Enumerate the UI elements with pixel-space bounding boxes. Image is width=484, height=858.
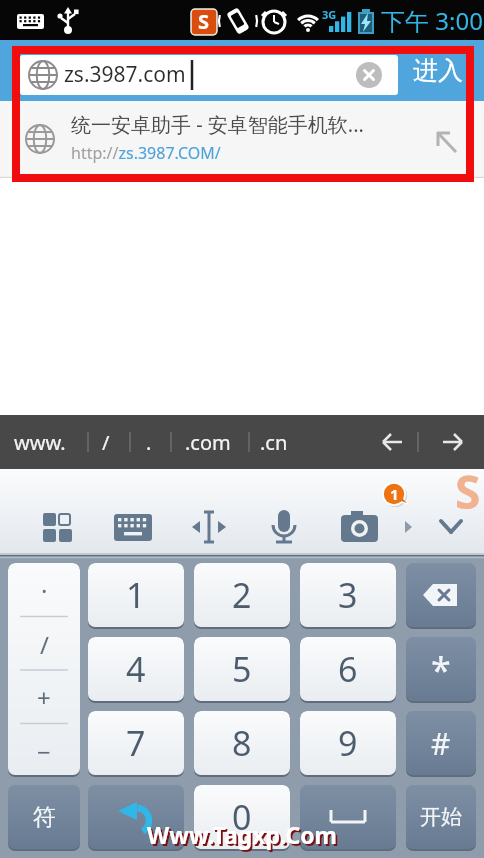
button[interactable]: + bbox=[8, 670, 80, 724]
staticText: www. bbox=[14, 429, 66, 456]
staticText: / bbox=[40, 628, 49, 661]
button[interactable]: www. bbox=[8, 415, 72, 469]
staticText: 4 bbox=[126, 646, 146, 692]
button[interactable] bbox=[114, 509, 154, 549]
staticText: 7 bbox=[126, 720, 146, 766]
button[interactable] bbox=[340, 509, 380, 549]
button[interactable]: .cn bbox=[254, 415, 294, 469]
button[interactable]: − bbox=[8, 724, 80, 775]
button[interactable] bbox=[190, 509, 230, 549]
staticText: 2 bbox=[232, 572, 252, 618]
button[interactable]: * bbox=[406, 637, 476, 701]
button[interactable] bbox=[436, 425, 470, 459]
button[interactable] bbox=[376, 425, 410, 459]
button[interactable]: 1 bbox=[88, 563, 184, 627]
staticText: − bbox=[37, 735, 51, 768]
button[interactable]: 统一安卓助手 - 安卓智能手机软... bbox=[0, 101, 484, 178]
staticText: 开始 bbox=[420, 804, 462, 830]
staticText: 3 bbox=[338, 572, 358, 618]
button[interactable]: # bbox=[406, 711, 476, 775]
staticText: 0 bbox=[232, 794, 252, 840]
staticText: 进入 bbox=[413, 55, 463, 86]
staticText: Www.Tagxp.Com bbox=[149, 821, 340, 852]
button[interactable]: 开始 bbox=[406, 785, 476, 849]
button[interactable]: 进入 bbox=[404, 40, 472, 101]
button[interactable]: 符 bbox=[8, 785, 80, 849]
button[interactable]: 0 bbox=[194, 785, 290, 849]
button[interactable]: 9 bbox=[300, 711, 396, 775]
button[interactable]: / bbox=[96, 415, 116, 469]
staticText: 1 bbox=[126, 572, 146, 618]
button[interactable]: .com bbox=[179, 415, 237, 469]
staticText: S bbox=[198, 8, 210, 35]
staticText: + bbox=[37, 681, 51, 714]
staticText: 8 bbox=[232, 720, 252, 766]
staticText: Www.Tagxp.Com bbox=[147, 819, 338, 850]
staticText: · bbox=[41, 574, 48, 607]
button[interactable]: 5 bbox=[194, 637, 290, 701]
staticText: 3G bbox=[322, 7, 337, 22]
button[interactable] bbox=[300, 785, 396, 849]
button[interactable] bbox=[266, 509, 306, 549]
staticText: * bbox=[431, 645, 451, 694]
button[interactable] bbox=[38, 509, 78, 549]
button[interactable]: 6 bbox=[300, 637, 396, 701]
button[interactable]: 8 bbox=[194, 711, 290, 775]
staticText: 6 bbox=[338, 646, 358, 692]
staticText: 符 bbox=[33, 803, 56, 832]
staticText: 9 bbox=[338, 720, 358, 766]
staticText: S bbox=[455, 460, 481, 523]
staticText: 5 bbox=[232, 646, 252, 692]
staticText: .com bbox=[185, 429, 231, 456]
staticText: # bbox=[431, 723, 451, 764]
staticText: . bbox=[146, 429, 152, 456]
button[interactable]: zs.3987.com bbox=[20, 55, 398, 95]
staticText: 统一安卓助手 - 安卓智能手机软... bbox=[71, 111, 364, 138]
button[interactable] bbox=[430, 509, 470, 549]
button[interactable]: · bbox=[8, 563, 80, 617]
button[interactable]: 7 bbox=[88, 711, 184, 775]
staticText: 1 bbox=[390, 484, 399, 504]
staticText: http://zs.3987.COM/ bbox=[71, 142, 221, 164]
button[interactable]: / bbox=[8, 617, 80, 671]
button[interactable]: 4 bbox=[88, 637, 184, 701]
button[interactable] bbox=[406, 563, 476, 627]
staticText: .cn bbox=[260, 429, 288, 456]
button[interactable]: 2 bbox=[194, 563, 290, 627]
staticText: 下午 3:00 bbox=[381, 4, 483, 37]
button[interactable] bbox=[88, 785, 184, 849]
button[interactable]: 3 bbox=[300, 563, 396, 627]
button[interactable]: . bbox=[140, 415, 158, 469]
staticText: / bbox=[102, 429, 110, 456]
staticText: zs.3987.com bbox=[64, 60, 186, 89]
